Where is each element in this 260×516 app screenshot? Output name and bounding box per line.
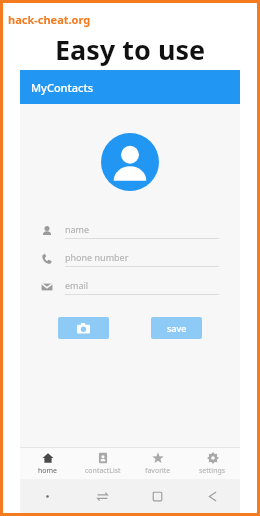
button[interactable]: name [41, 223, 219, 239]
staticText: contactList [85, 466, 121, 476]
button[interactable]: save [151, 317, 202, 339]
button[interactable]: email [41, 279, 219, 295]
staticText: email [65, 279, 89, 291]
button[interactable]: More [20, 479, 75, 513]
button[interactable]: MyContacts [20, 70, 240, 104]
button[interactable]: contactList [75, 448, 130, 479]
button[interactable]: phone number [41, 251, 219, 267]
staticText: home [38, 466, 58, 476]
staticText: name [65, 223, 90, 235]
button[interactable]: Contact photo [101, 133, 159, 191]
staticText: Easy to use [55, 31, 206, 68]
button[interactable]: Recents [130, 479, 185, 513]
staticText: settings [199, 466, 226, 476]
button[interactable]: favorite [130, 448, 185, 479]
staticText: favorite [145, 466, 171, 476]
button[interactable]: Back [185, 479, 240, 513]
staticText: hack-cheat.org [8, 12, 91, 27]
button[interactable]: settings [185, 448, 240, 479]
button[interactable]: Switch [75, 479, 130, 513]
staticText: phone number [65, 251, 129, 263]
staticText: MyContacts [31, 80, 93, 95]
button[interactable]: Take photo [58, 317, 109, 339]
button[interactable]: home [20, 448, 75, 479]
staticText: save [167, 322, 187, 334]
